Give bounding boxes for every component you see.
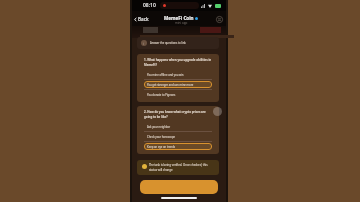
staticText: 08:10 — [143, 2, 156, 9]
staticText: Check your horoscope — [147, 135, 176, 139]
staticText: You get stronger and can mine more — [147, 83, 194, 87]
button[interactable]: i — [137, 37, 219, 49]
staticText: Keep an eye on trends — [147, 145, 176, 149]
staticText: Back — [138, 16, 149, 22]
staticText: The task is being verified. Once checked… — [149, 163, 214, 172]
staticText: i — [143, 41, 145, 46]
staticText: mini app — [175, 21, 188, 25]
button[interactable]: Ask your neighbor — [144, 123, 212, 130]
staticText: You donate to Pigeons — [147, 93, 176, 97]
button[interactable]: Continue — [140, 180, 218, 194]
button[interactable]: Menu — [215, 15, 223, 23]
staticText: Answer the questions to link — [150, 41, 186, 45]
button[interactable]: You mine offline and you win — [144, 71, 212, 78]
staticText: 2. How do you know what crypto prices ar… — [144, 110, 212, 119]
button[interactable]: Keep an eye on trends — [144, 143, 212, 150]
staticText: You mine offline and you win — [147, 73, 184, 77]
staticText: Ask your neighbor — [147, 125, 171, 129]
staticText: 1. What happens when you upgrade abiliti… — [144, 58, 212, 67]
button[interactable]: Check your horoscope — [144, 133, 212, 140]
button[interactable]: You get stronger and can mine more — [144, 81, 212, 88]
button[interactable]: You donate to Pigeons — [144, 91, 212, 98]
staticText: MemeFi Coin — [164, 15, 194, 21]
button[interactable]: Back — [134, 16, 149, 22]
